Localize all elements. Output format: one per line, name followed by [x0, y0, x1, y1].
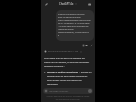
button[interactable]: Recherche terminée dans 1 site: [44, 50, 92, 53]
staticText: : Installe un: [79, 70, 92, 74]
staticText: routes.html&pub_13733518&xy=2: [58, 30, 89, 33]
button[interactable]: Voice input: [88, 89, 92, 93]
staticText: 8: [58, 33, 60, 36]
staticText: grillage avec de plus petites ouvertures: [47, 74, 88, 78]
button[interactable]: Read aloud: [85, 44, 88, 47]
staticText: 1.: [44, 70, 46, 74]
staticText: -videos-de-mardi: [58, 27, 74, 30]
staticText: Message ChatGPT: [49, 90, 69, 93]
staticText: pour limiter l'accès aux vidéos qui: [47, 78, 82, 82]
button[interactable]: Copy: [82, 44, 85, 47]
staticText: https://www.jeuxvideo.com/forums/: [58, 18, 91, 21]
staticText: 42-01-16190280-1-0-1-0-halo-idees: [58, 21, 90, 24]
staticText: Propose la meilleure solution: [58, 12, 85, 15]
staticText: dépassent.: [47, 82, 59, 86]
staticText: Pour éviter que les gens ne saisillent l…: [44, 56, 85, 60]
button[interactable]: Edit: [90, 44, 93, 47]
staticText: ChatGPT 4o: [59, 2, 74, 6]
button[interactable]: Edit conversation: [44, 2, 49, 7]
button[interactable]: Attach: [43, 88, 93, 94]
staticText: ChatGPT peut faire des erreurs. Envisage…: [43, 95, 93, 101]
staticText: Grillage à petites ouvertures: [47, 70, 79, 74]
button[interactable]: Attach: [44, 89, 48, 93]
button[interactable]: New chat: [87, 2, 92, 7]
button[interactable]: ChatGPT 4o: [59, 2, 77, 6]
staticText: pour ce logiciel de mardi: [58, 15, 81, 18]
staticText: Recherche terminée dans 1 site: [48, 50, 79, 53]
staticText: -1-0-halo-idees-pour-55pogels-les: [58, 24, 89, 27]
staticText: vidéos de ton grillage, tu pourrais envi…: [44, 60, 90, 64]
staticText: quelques solutions :: [44, 64, 65, 68]
button[interactable]: Propose la meilleure solution: [56, 10, 94, 41]
